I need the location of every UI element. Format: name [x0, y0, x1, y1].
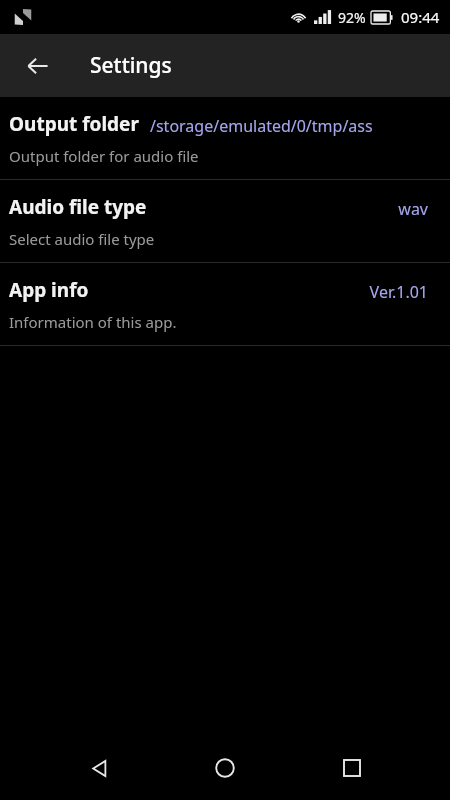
button[interactable]: Output folder: [0, 97, 450, 179]
staticText: Select audio file type: [9, 229, 155, 249]
button[interactable]: Home: [197, 740, 253, 796]
staticText: Output folder for audio file: [9, 146, 199, 166]
staticText: Ver.1.01: [369, 281, 428, 303]
button[interactable]: App info: [0, 263, 450, 345]
staticText: /storage/emulated/0/tmp/ass: [150, 115, 373, 137]
button[interactable]: Recent apps: [324, 740, 380, 796]
staticText: Output folder: [9, 111, 139, 137]
staticText: 09:44: [401, 7, 440, 27]
staticText: Settings: [90, 51, 172, 80]
staticText: wav: [398, 198, 428, 220]
button[interactable]: Back: [71, 740, 127, 796]
staticText: 92%: [338, 8, 366, 27]
staticText: Audio file type: [9, 194, 147, 220]
staticText: Information of this app.: [9, 312, 177, 332]
button[interactable]: Back: [14, 42, 62, 90]
staticText: App info: [9, 277, 89, 303]
button[interactable]: Audio file type: [0, 180, 450, 262]
